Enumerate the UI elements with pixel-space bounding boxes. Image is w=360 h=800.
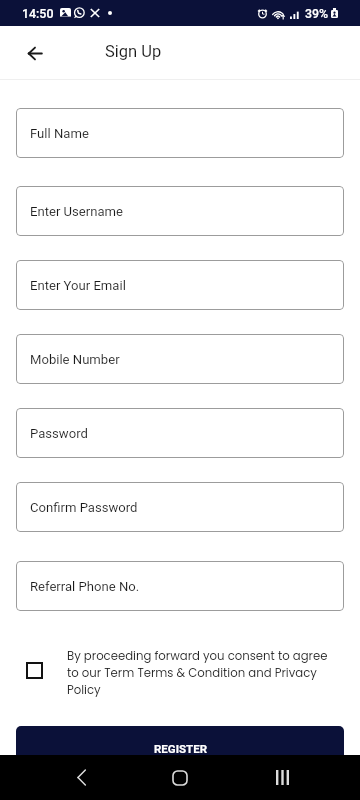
button[interactable]: Referral Phone No. [16,561,344,611]
button[interactable]: REGISTER [16,726,344,776]
staticText: 14:50 [22,6,54,21]
staticText: By proceeding forward you consent to agr… [67,648,339,698]
button[interactable]: Enter Your Email [16,260,344,310]
staticText: Password [30,426,88,441]
button[interactable]: Accept terms and conditions [26,662,43,679]
button[interactable]: Password [16,408,344,458]
staticText: 39% [305,6,329,21]
button[interactable]: Back [18,37,51,70]
staticText: Mobile Number [30,352,120,367]
button[interactable]: Home [156,755,204,800]
staticText: Enter Username [30,204,123,219]
staticText: Referral Phone No. [30,579,140,594]
button[interactable]: Full Name [16,108,344,158]
staticText: REGISTER [154,742,207,755]
button[interactable]: Recent apps [258,755,306,800]
staticText: Enter Your Email [30,278,126,293]
button[interactable]: Confirm Password [16,482,344,532]
staticText: Sign Up [105,42,162,61]
button[interactable]: Back [57,755,105,800]
staticText: Full Name [30,126,89,141]
button[interactable]: Enter Username [16,186,344,236]
button[interactable]: Mobile Number [16,334,344,384]
staticText: Confirm Password [30,500,138,515]
